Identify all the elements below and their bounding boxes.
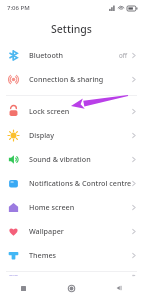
button[interactable]: Back — [95, 276, 143, 300]
button[interactable]: Themes — [0, 243, 143, 267]
staticText: Sound & vibration — [29, 154, 132, 164]
staticText: Themes — [29, 250, 132, 260]
staticText: Lock screen — [29, 106, 132, 116]
button[interactable]: Home — [47, 276, 95, 300]
staticText: 7:06 PM — [7, 4, 30, 12]
staticText: Wallpaper — [29, 226, 132, 236]
button[interactable]: Lock screen — [0, 99, 143, 123]
staticText: Home screen — [29, 202, 132, 212]
button[interactable]: Connection & sharing — [0, 67, 143, 91]
button[interactable]: Wallpaper — [0, 219, 143, 243]
button[interactable]: Recents — [0, 276, 47, 300]
button[interactable]: Notifications & Control centre — [0, 171, 143, 195]
button[interactable]: Home screen — [0, 195, 143, 219]
button[interactable]: Passwords & security — [0, 275, 143, 276]
staticText: Bluetooth — [29, 50, 119, 60]
button[interactable]: Sound & vibration — [0, 147, 143, 171]
staticText: Notifications & Control centre — [29, 178, 132, 188]
staticText: off — [119, 51, 128, 59]
button[interactable]: Bluetooth — [0, 43, 143, 67]
staticText: Settings — [51, 22, 92, 36]
button[interactable]: Display — [0, 123, 143, 147]
staticText: Display — [29, 130, 132, 140]
staticText: Connection & sharing — [29, 74, 132, 84]
